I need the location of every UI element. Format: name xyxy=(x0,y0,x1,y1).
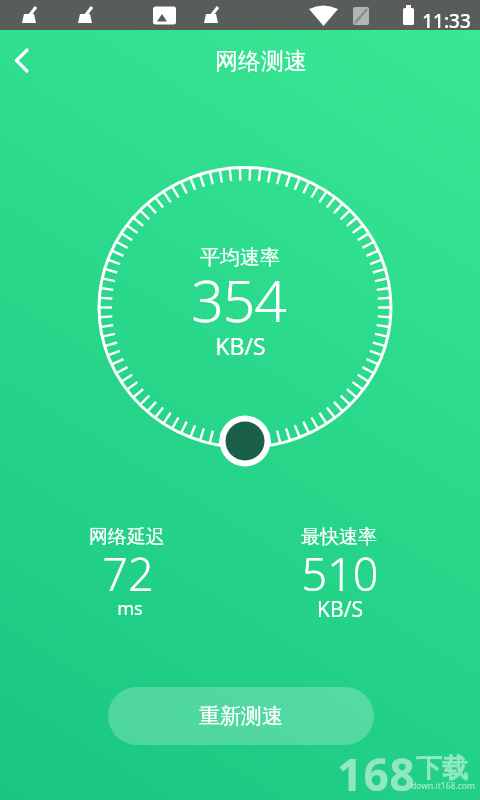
button[interactable]: 重新测速 xyxy=(108,687,374,745)
staticText: 网络延迟 xyxy=(89,525,165,549)
button[interactable] xyxy=(0,30,56,92)
staticText: 72 xyxy=(102,543,154,604)
staticText: ms xyxy=(117,596,143,621)
staticText: 网络测速 xyxy=(215,47,307,76)
staticText: 重新测速 xyxy=(199,703,283,729)
staticText: 下载 xyxy=(416,752,468,785)
staticText: KB/S xyxy=(215,330,266,361)
staticText: 168 xyxy=(337,744,416,800)
staticText: KB/S xyxy=(317,595,363,624)
staticText: down.it168.com xyxy=(411,780,475,792)
staticText: 平均速率 xyxy=(200,245,280,270)
staticText: 11:33 xyxy=(422,8,471,34)
staticText: 354 xyxy=(191,261,286,339)
staticText: 510 xyxy=(301,543,379,604)
staticText: 最快速率 xyxy=(301,525,377,549)
